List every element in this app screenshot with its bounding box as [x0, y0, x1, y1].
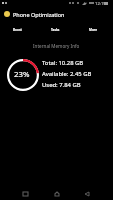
button[interactable]: More: [75, 21, 113, 35]
button[interactable]: Recents: [17, 187, 32, 200]
button[interactable]: Tasks: [37, 21, 75, 35]
button[interactable]: Phone Optimization: [0, 9, 113, 21]
button[interactable]: Home: [49, 187, 64, 200]
staticText: Total: 10.28 GB: [42, 59, 84, 67]
staticText: More: [89, 28, 98, 32]
staticText: 23%: [14, 69, 30, 80]
staticText: Boost: [13, 28, 22, 32]
staticText: Phone Optimization: [13, 11, 65, 18]
button[interactable]: Boost: [0, 21, 37, 35]
staticText: 12:19: [95, 1, 106, 7]
staticText: Tasks: [51, 28, 60, 32]
staticText: Internal Memory Info: [33, 43, 80, 49]
staticText: Used: 7.84 GB: [42, 81, 81, 89]
staticText: Available: 2.45 GB: [42, 70, 92, 78]
button[interactable]: Back: [79, 187, 94, 200]
